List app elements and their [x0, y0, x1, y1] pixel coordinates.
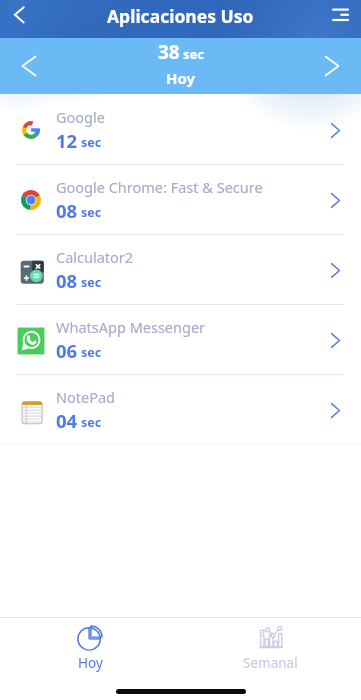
staticText: Aplicaciones Uso: [107, 4, 254, 28]
staticText: Hoy: [166, 68, 196, 88]
button[interactable]: NotePad: [0, 375, 361, 444]
staticText: Hoy: [78, 654, 103, 672]
button[interactable]: Google: [0, 95, 361, 165]
staticText: 38: [158, 39, 180, 65]
staticText: sec: [81, 344, 102, 361]
button[interactable]: Previous day: [14, 51, 44, 81]
staticText: sec: [183, 45, 204, 63]
staticText: 06: [56, 338, 78, 363]
staticText: Semanal: [243, 654, 298, 672]
staticText: 12: [56, 128, 78, 153]
button[interactable]: Semanal: [180, 618, 361, 674]
staticText: 08: [56, 268, 78, 293]
button[interactable]: Google Chrome: Fast & Secure: [0, 165, 361, 235]
button[interactable]: Menu: [324, 3, 356, 35]
staticText: sec: [81, 204, 102, 221]
button[interactable]: Next day: [317, 51, 347, 81]
staticText: Google Chrome: Fast & Secure: [56, 177, 263, 197]
staticText: WhatsApp Messenger: [56, 317, 206, 337]
staticText: 04: [56, 408, 78, 433]
button[interactable]: Back: [3, 3, 35, 35]
button[interactable]: Hoy: [0, 618, 180, 674]
staticText: Google: [56, 107, 105, 127]
staticText: sec: [81, 414, 102, 431]
staticText: sec: [81, 134, 102, 151]
button[interactable]: WhatsApp Messenger: [0, 305, 361, 375]
button[interactable]: Calculator2: [0, 235, 361, 305]
staticText: Calculator2: [56, 247, 134, 267]
staticText: NotePad: [56, 387, 116, 407]
staticText: 08: [56, 198, 78, 223]
staticText: sec: [81, 274, 102, 291]
